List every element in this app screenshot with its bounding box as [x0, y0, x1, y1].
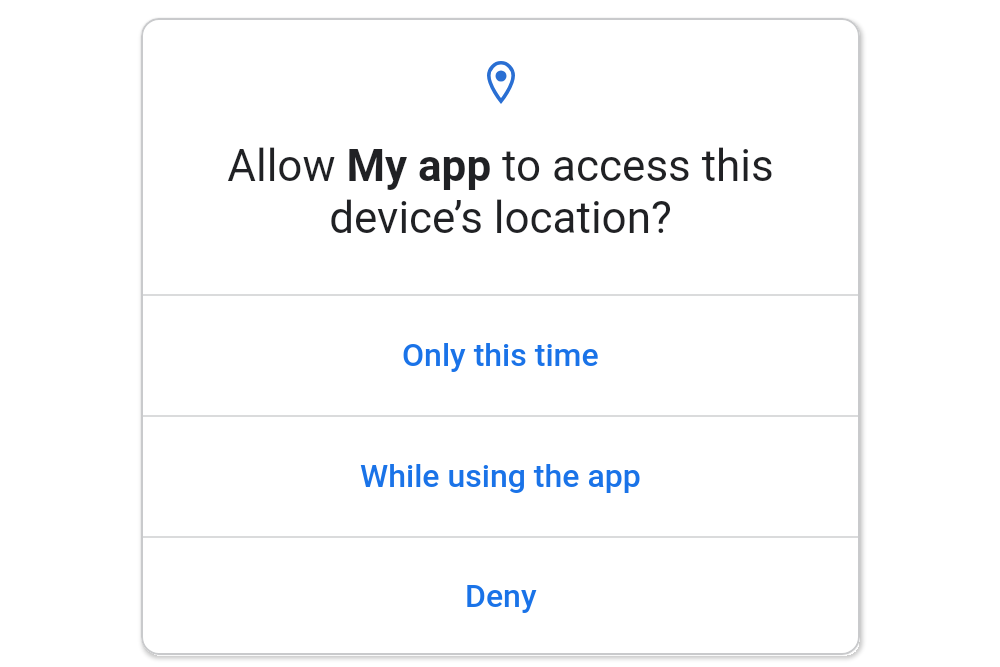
staticText: Deny — [465, 577, 537, 615]
staticText: Only this time — [402, 336, 599, 374]
staticText: Allow My app to access this device’s loc… — [141, 140, 860, 244]
button[interactable]: Deny — [141, 536, 860, 655]
button[interactable]: While using the app — [141, 415, 860, 536]
button[interactable]: Only this time — [141, 294, 860, 415]
staticText: While using the app — [360, 457, 641, 495]
